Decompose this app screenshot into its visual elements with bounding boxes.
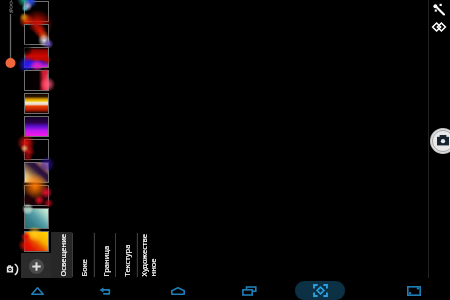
button[interactable]: Recents <box>232 278 266 300</box>
button[interactable]: Auto enhance <box>429 0 450 19</box>
button[interactable]: Switch camera <box>5 262 19 277</box>
button[interactable]: Back <box>89 278 123 300</box>
button[interactable]: Граница <box>94 232 115 278</box>
button[interactable] <box>25 48 48 67</box>
button[interactable] <box>25 117 48 136</box>
button[interactable] <box>25 71 48 90</box>
staticText: 1 0 0 % <box>6 0 16 15</box>
staticText: Граница <box>100 245 110 276</box>
button[interactable]: Текстура <box>115 232 136 278</box>
button[interactable]: Освещение <box>51 232 72 278</box>
staticText: Боке <box>78 258 88 276</box>
button[interactable] <box>25 2 48 21</box>
button[interactable] <box>25 94 48 113</box>
button[interactable]: Home <box>161 278 195 300</box>
button[interactable] <box>25 25 48 44</box>
staticText: Текстура <box>121 244 131 276</box>
button[interactable]: Collapse <box>20 278 54 300</box>
staticText: Освещение <box>57 233 67 276</box>
button[interactable] <box>25 232 48 251</box>
button[interactable]: Художественное <box>137 232 158 278</box>
button[interactable] <box>25 209 48 228</box>
button[interactable]: Effects <box>429 19 450 37</box>
button[interactable] <box>25 140 48 159</box>
button[interactable] <box>25 163 48 182</box>
button[interactable]: Add <box>21 253 52 280</box>
button[interactable]: Screenshot <box>397 278 431 300</box>
button[interactable]: Multi window <box>295 281 345 300</box>
button[interactable] <box>25 186 48 205</box>
button[interactable]: Боке <box>72 232 93 278</box>
staticText: Художественное <box>138 232 157 276</box>
button[interactable]: Shutter <box>430 128 450 154</box>
